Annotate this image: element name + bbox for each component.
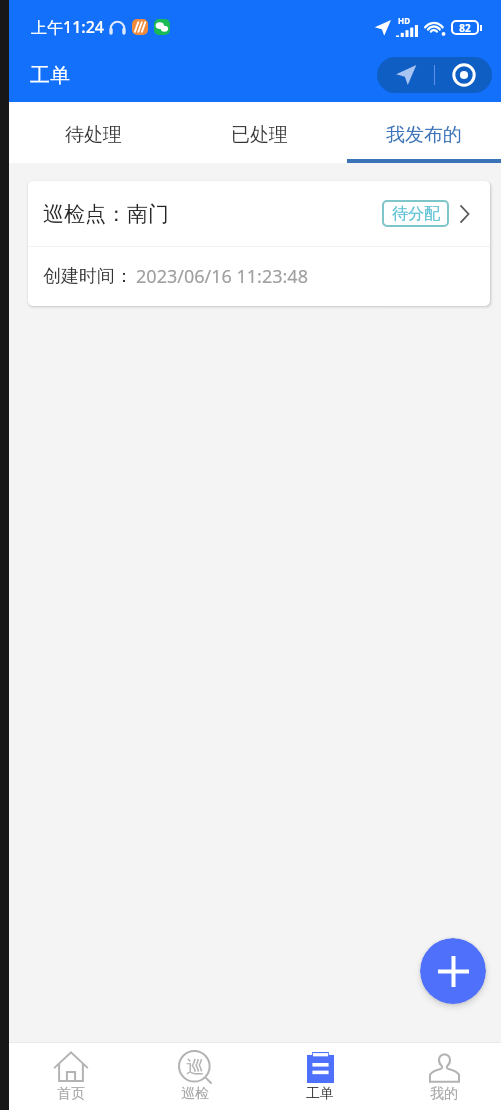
staticText: 待处理	[65, 123, 122, 147]
button[interactable]: 巡	[133, 1043, 257, 1110]
staticText: 首页	[57, 1085, 85, 1103]
staticText: HD	[398, 15, 410, 26]
staticText: 工单	[306, 1085, 334, 1103]
button[interactable]: 我的	[382, 1043, 501, 1110]
staticText: 上午11:24	[31, 16, 104, 38]
staticText: 2023/06/16 11:23:48	[136, 264, 308, 289]
staticText: 82	[459, 21, 471, 35]
button[interactable]: Navigate and check in	[377, 57, 492, 93]
staticText: 已处理	[231, 123, 288, 147]
staticText: 我发布的	[386, 123, 462, 147]
button[interactable]: 巡检点：南门	[28, 181, 490, 306]
button[interactable]: 我发布的	[342, 102, 501, 163]
staticText: 我的	[430, 1085, 458, 1103]
staticText: 巡	[186, 1056, 204, 1079]
button[interactable]: Add work order	[420, 938, 486, 1004]
staticText: 巡检	[181, 1085, 209, 1103]
staticText: 创建时间：	[43, 265, 133, 288]
staticText: 工单	[30, 63, 70, 88]
button[interactable]: 待处理	[11, 102, 175, 163]
staticText: 巡检点：南门	[43, 201, 169, 227]
button[interactable]: 工单	[258, 1043, 382, 1110]
button[interactable]: 首页	[9, 1043, 133, 1110]
button[interactable]: 已处理	[177, 102, 341, 163]
staticText: 待分配	[392, 204, 440, 224]
